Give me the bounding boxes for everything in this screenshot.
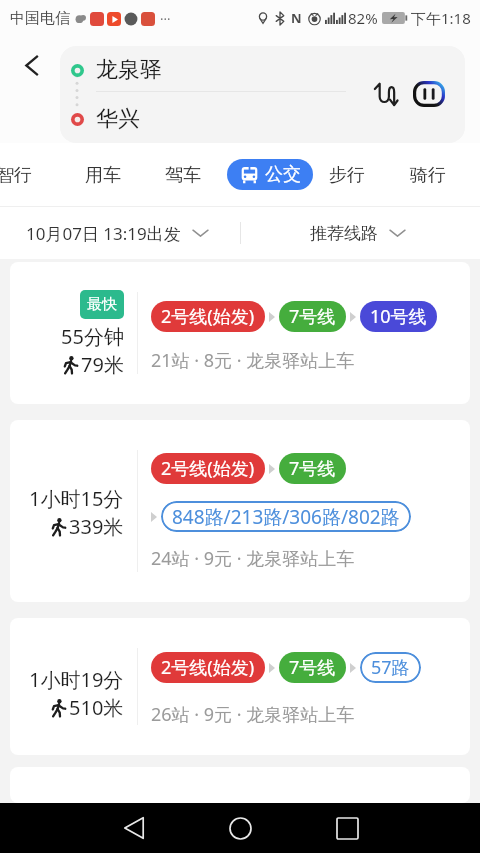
button[interactable]: 骑行 xyxy=(410,153,450,197)
staticText: 7号线 xyxy=(289,456,336,481)
button[interactable]: 1小时19分 xyxy=(10,618,470,755)
staticText: 7号线 xyxy=(289,655,336,680)
staticText: 1小时19分 xyxy=(29,666,124,693)
button[interactable]: 10月07日 13:19出发 xyxy=(18,211,216,255)
staticText: 推荐线路 xyxy=(310,223,378,244)
staticText: 10月07日 13:19出发 xyxy=(26,222,181,245)
button[interactable]: 智行 xyxy=(0,153,36,197)
staticText: 2号线(始发) xyxy=(161,655,255,680)
staticText: 82% xyxy=(348,8,378,28)
staticText: 智行 xyxy=(0,164,32,187)
staticText: 华兴 xyxy=(96,105,140,133)
staticText: 驾车 xyxy=(165,164,201,187)
staticText: 510米 xyxy=(69,694,124,721)
button[interactable]: 公交 xyxy=(227,159,313,190)
staticText: 57路 xyxy=(371,655,410,680)
staticText: 龙泉驿 xyxy=(96,56,162,84)
staticText: N xyxy=(291,9,302,27)
staticText: 骑行 xyxy=(410,164,446,187)
button[interactable]: Back xyxy=(110,804,158,852)
button[interactable]: 最快 xyxy=(10,262,470,404)
staticText: 2号线(始发) xyxy=(161,304,255,329)
staticText: 79米 xyxy=(81,351,124,378)
staticText: 步行 xyxy=(329,164,365,187)
staticText: 24站 · 9元 · 龙泉驿站上车 xyxy=(151,546,355,571)
staticText: 公交 xyxy=(265,163,301,186)
button[interactable]: My favorites xyxy=(411,76,447,112)
button[interactable]: Swap origin and destination xyxy=(367,77,401,111)
staticText: 10号线 xyxy=(370,304,427,329)
staticText: 26站 · 9元 · 龙泉驿站上车 xyxy=(151,702,355,727)
staticText: 848路/213路/306路/802路 xyxy=(172,504,400,530)
staticText: ··· xyxy=(160,10,171,28)
staticText: 55分钟 xyxy=(61,323,124,350)
button[interactable]: 用车 xyxy=(85,153,125,197)
staticText: 最快 xyxy=(87,295,117,314)
staticText: 用车 xyxy=(85,164,121,187)
button[interactable]: Recent apps xyxy=(323,804,371,852)
button[interactable]: 推荐线路 xyxy=(302,211,413,255)
staticText: 中国电信 xyxy=(10,9,70,28)
staticText: 1小时15分 xyxy=(29,485,124,512)
staticText: 339米 xyxy=(69,513,124,540)
button[interactable]: 驾车 xyxy=(165,153,205,197)
button[interactable]: Back xyxy=(14,48,49,83)
button[interactable]: Home xyxy=(216,804,264,852)
staticText: 下午1:18 xyxy=(411,8,471,28)
button[interactable]: 华兴 xyxy=(60,98,465,140)
staticText: 7号线 xyxy=(289,304,336,329)
staticText: 21站 · 8元 · 龙泉驿站上车 xyxy=(151,348,355,373)
button[interactable]: 龙泉驿 xyxy=(60,49,465,91)
staticText: 2号线(始发) xyxy=(161,456,255,481)
button[interactable]: 1小时15分 xyxy=(10,420,470,602)
button[interactable]: 步行 xyxy=(329,153,369,197)
